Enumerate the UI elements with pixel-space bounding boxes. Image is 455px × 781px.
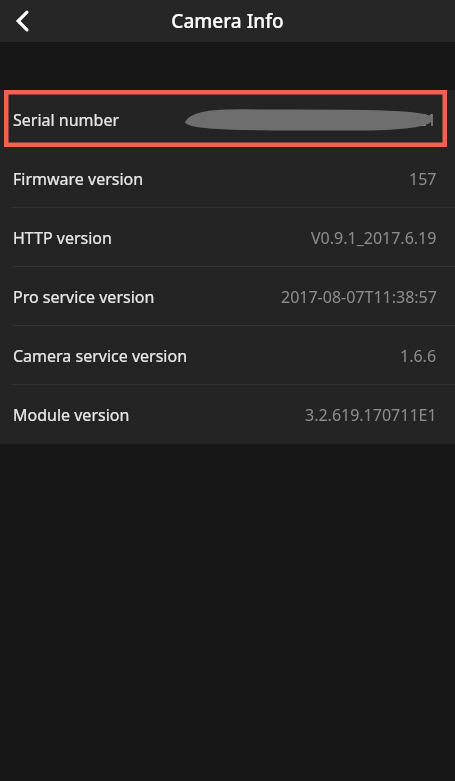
button[interactable]: Back (0, 0, 46, 42)
staticText: 3.2.619.170711E1 (305, 404, 437, 426)
staticText: Camera service version (13, 345, 188, 367)
button[interactable]: Camera service version (0, 326, 455, 385)
button[interactable]: Pro service version (0, 267, 455, 326)
staticText: 157 (409, 168, 437, 190)
staticText: Pro service version (13, 286, 155, 308)
staticText: IPE1 (403, 109, 437, 131)
staticText: Firmware version (13, 168, 144, 190)
staticText: 2017-08-07T11:38:57 (281, 286, 437, 308)
staticText: HTTP version (13, 227, 112, 249)
button[interactable]: Serial number (0, 90, 455, 149)
button[interactable]: HTTP version (0, 208, 455, 267)
button[interactable]: Firmware version (0, 149, 455, 208)
staticText: Camera Info (0, 8, 455, 34)
staticText: 1.6.6 (400, 345, 437, 367)
button[interactable]: Module version (0, 385, 455, 444)
staticText: Module version (13, 404, 130, 426)
staticText: V0.9.1_2017.6.19 (311, 227, 437, 249)
staticText: Serial number (13, 109, 120, 131)
